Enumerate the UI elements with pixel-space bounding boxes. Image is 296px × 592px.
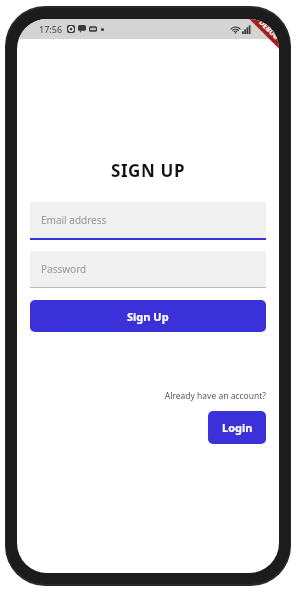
button[interactable]: Email address <box>30 202 266 240</box>
staticText: 17:56 <box>39 23 63 35</box>
staticText: Password <box>41 262 87 276</box>
staticText: Login <box>222 420 253 435</box>
staticText: DEBUG <box>257 19 279 43</box>
staticText: SIGN UP <box>30 159 266 182</box>
staticText: Already have an account? <box>30 390 266 402</box>
staticText: Email address <box>41 213 107 227</box>
button[interactable]: Sign Up <box>30 300 266 332</box>
button[interactable]: Password <box>30 251 266 288</box>
button[interactable]: Login <box>208 411 266 444</box>
staticText: Sign Up <box>127 309 169 324</box>
